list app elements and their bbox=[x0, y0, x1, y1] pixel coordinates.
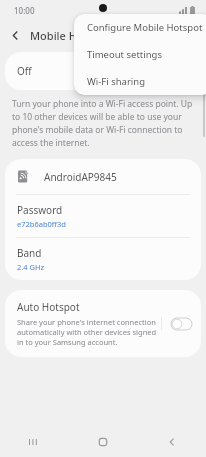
staticText: 10:00 bbox=[14, 5, 35, 16]
staticText: Wi-Fi sharing bbox=[87, 75, 146, 88]
button[interactable]: Auto Hotspot bbox=[5, 290, 201, 357]
button[interactable]: Back bbox=[137, 427, 206, 457]
staticText: Password bbox=[17, 203, 63, 217]
button[interactable]: Home bbox=[68, 427, 137, 457]
staticText: 2.4 GHz bbox=[17, 262, 45, 272]
staticText: Auto Hotspot bbox=[17, 300, 80, 314]
button[interactable]: Configure Mobile Hotspot bbox=[74, 14, 206, 41]
button[interactable]: Auto Hotspot toggle bbox=[171, 318, 192, 330]
staticText: Share your phone's internet connection a… bbox=[17, 317, 157, 347]
staticText: Timeout settings bbox=[87, 48, 162, 61]
button[interactable]: Recent apps bbox=[0, 427, 68, 457]
staticText: Configure Mobile Hotspot bbox=[87, 21, 203, 34]
button[interactable]: Password bbox=[5, 195, 201, 237]
staticText: AndroidAP9845 bbox=[44, 170, 117, 184]
staticText: e72b6ab0ff3d bbox=[17, 219, 66, 229]
button[interactable]: Wi-Fi sharing bbox=[74, 68, 206, 95]
staticText: Off bbox=[17, 64, 32, 78]
button[interactable]: Back bbox=[0, 20, 30, 50]
staticText: Mobile Hotspot bbox=[30, 28, 112, 43]
button[interactable]: Band bbox=[5, 238, 201, 280]
button[interactable]: Off bbox=[5, 52, 201, 90]
staticText: Band bbox=[17, 246, 42, 260]
button[interactable]: AndroidAP9845 bbox=[5, 159, 201, 194]
button[interactable]: Timeout settings bbox=[74, 41, 206, 68]
staticText: Turn your phone into a Wi-Fi access poin… bbox=[12, 98, 194, 149]
